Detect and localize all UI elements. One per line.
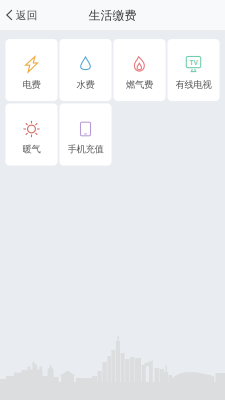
button[interactable]: 返回 (0, 2, 46, 29)
staticText: 暖气 (22, 143, 40, 155)
button[interactable]: TV (167, 39, 219, 101)
button[interactable]: 燃气费 (113, 39, 165, 101)
staticText: 水费 (76, 79, 94, 90)
staticText: 返回 (16, 9, 38, 22)
button[interactable]: 暖气 (5, 103, 57, 165)
staticText: 燃气费 (126, 79, 153, 90)
button[interactable]: 手机充值 (59, 103, 111, 165)
staticText: 有线电视 (175, 79, 211, 90)
button[interactable]: 电费 (5, 39, 57, 101)
staticText: 手机充值 (67, 143, 103, 155)
button[interactable]: 水费 (59, 39, 111, 101)
staticText: 电费 (22, 79, 40, 90)
staticText: 生活缴费 (88, 8, 136, 23)
staticText: TV (189, 58, 197, 67)
